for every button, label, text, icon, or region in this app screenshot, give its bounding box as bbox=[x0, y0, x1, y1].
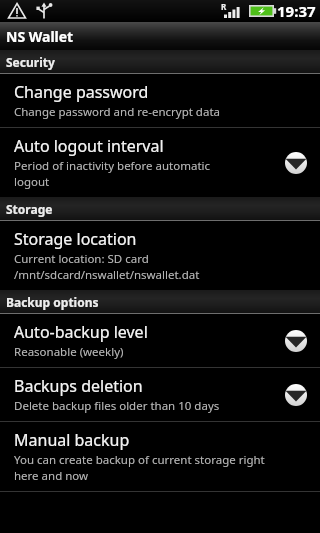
button[interactable]: Auto logout interval bbox=[0, 128, 320, 197]
staticText: logout bbox=[14, 174, 50, 190]
button[interactable]: Storage location bbox=[0, 221, 320, 290]
staticText: NS Wallet bbox=[6, 27, 74, 46]
staticText: Auto logout interval bbox=[14, 135, 164, 157]
button[interactable]: Backups deletion bbox=[0, 368, 320, 421]
staticText: here and now bbox=[14, 468, 89, 484]
staticText: Backups deletion bbox=[14, 375, 143, 397]
staticText: Reasonable (weekly) bbox=[14, 344, 124, 360]
button[interactable]: Change password bbox=[0, 74, 320, 127]
staticText: Current location: SD card bbox=[14, 251, 149, 267]
button[interactable]: Auto-backup level bbox=[0, 314, 320, 367]
staticText: Manual backup bbox=[14, 429, 130, 451]
button[interactable]: Open list bbox=[283, 328, 309, 354]
staticText: Period of inactivity before automatic bbox=[14, 158, 211, 174]
staticText: Storage location bbox=[14, 228, 137, 250]
staticText: Delete backup files older than 10 days bbox=[14, 398, 220, 414]
staticText: Change password and re-encrypt data bbox=[14, 104, 220, 120]
staticText: 19:37 bbox=[277, 1, 316, 21]
staticText: Change password bbox=[14, 81, 149, 103]
button[interactable]: Open list bbox=[283, 150, 309, 176]
staticText: Security bbox=[6, 54, 55, 70]
staticText: You can create backup of current storage… bbox=[14, 452, 265, 468]
staticText: Backup options bbox=[6, 294, 99, 310]
button[interactable]: Manual backup bbox=[0, 422, 320, 491]
staticText: R bbox=[221, 1, 227, 12]
staticText: Auto-backup level bbox=[14, 321, 148, 343]
button[interactable]: Open list bbox=[283, 382, 309, 408]
staticText: Storage bbox=[6, 201, 53, 217]
staticText: /mnt/sdcard/nswallet/nswallet.dat bbox=[14, 267, 200, 283]
